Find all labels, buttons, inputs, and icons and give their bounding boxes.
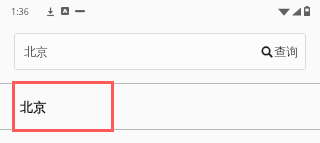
button[interactable]: 北京 <box>0 84 320 129</box>
staticText: 北京 <box>24 44 48 59</box>
staticText: 北京 <box>20 99 46 115</box>
staticText: 1:36 <box>11 5 29 17</box>
staticText: A <box>63 7 68 15</box>
staticText: 查询 <box>274 44 298 59</box>
button[interactable]: 北京 <box>14 33 306 70</box>
button[interactable]: Search <box>261 33 298 70</box>
other: Search <box>261 46 273 58</box>
